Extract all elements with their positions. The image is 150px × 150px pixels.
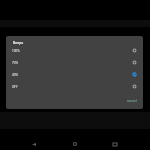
staticText: cancel [127,99,137,103]
button[interactable]: 70% [6,56,143,68]
staticText: Beeps [13,40,24,45]
button[interactable]: Home [61,138,89,150]
button[interactable]: 40% [6,68,143,80]
staticText: 70% [12,61,18,65]
staticText: OFF [12,85,18,89]
staticText: 100% [12,49,20,53]
button[interactable]: OFF [6,80,143,92]
staticText: 40% [12,73,18,77]
button[interactable]: 100% [6,44,143,56]
button[interactable]: Back [20,138,48,150]
button[interactable]: cancel [125,97,139,105]
button[interactable]: Recents [101,138,129,150]
